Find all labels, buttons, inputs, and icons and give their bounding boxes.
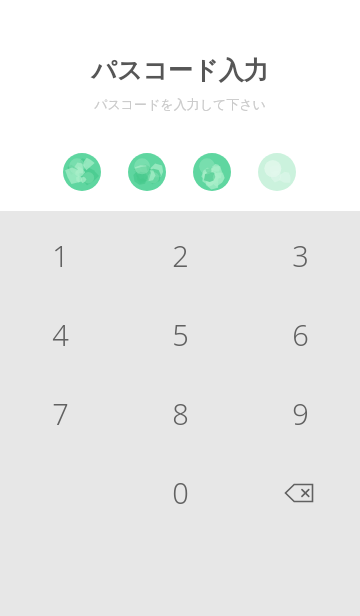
button[interactable]: 1	[0, 216, 120, 295]
button[interactable]: 2	[120, 216, 240, 295]
button[interactable]: Backspace	[240, 453, 360, 532]
button[interactable]: 3	[240, 216, 360, 295]
button[interactable]: 7	[0, 374, 120, 453]
staticText: 1	[52, 236, 69, 275]
staticText: 8	[172, 394, 189, 433]
staticText: 2	[172, 236, 189, 275]
staticText: 6	[292, 315, 309, 354]
button[interactable]: 4	[0, 295, 120, 374]
staticText: 3	[292, 236, 309, 275]
button[interactable]: 8	[120, 374, 240, 453]
button[interactable]: 0	[120, 453, 240, 532]
staticText: 5	[172, 315, 189, 354]
button[interactable]: 9	[240, 374, 360, 453]
staticText: 9	[292, 394, 309, 433]
staticText: 4	[52, 315, 69, 354]
staticText: 0	[172, 473, 189, 512]
button[interactable]: 6	[240, 295, 360, 374]
button[interactable]: 5	[120, 295, 240, 374]
staticText: パスコードを入力して下さい	[0, 96, 360, 112]
staticText: パスコード入力	[0, 55, 360, 86]
staticText: 7	[52, 394, 69, 433]
